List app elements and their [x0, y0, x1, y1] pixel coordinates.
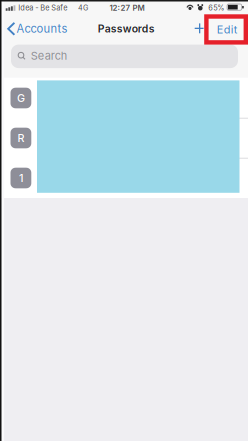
staticText: Search	[31, 49, 68, 62]
staticText: 1	[19, 171, 23, 185]
button[interactable]: Add password	[0, 0, 248, 441]
button[interactable]: Password entry	[0, 0, 21, 21]
staticText: Edit	[217, 23, 238, 36]
staticText: 65%	[208, 3, 224, 12]
staticText: 12:27 PM	[109, 3, 144, 13]
button[interactable]: Password entry	[0, 0, 21, 21]
staticText: Passwords	[98, 22, 155, 35]
button[interactable]: Password entry	[0, 0, 21, 21]
staticText: Accounts	[16, 22, 67, 35]
staticText: G	[17, 91, 25, 105]
button[interactable]: Accounts	[0, 0, 70, 29]
button[interactable]: Edit	[0, 0, 36, 29]
staticText: Idea - Be Safe	[18, 3, 67, 12]
staticText: 4G	[78, 3, 88, 12]
staticText: R	[17, 131, 24, 145]
